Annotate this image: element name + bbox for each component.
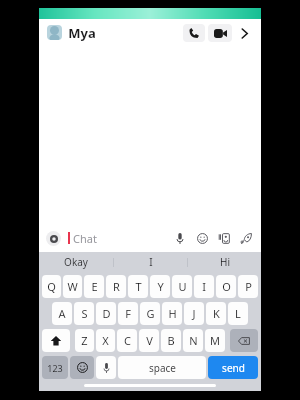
button[interactable]: send	[208, 356, 258, 379]
staticText: Okay	[64, 255, 88, 269]
button[interactable]: Stickers	[216, 230, 232, 246]
staticText: M	[210, 333, 220, 348]
button[interactable]: Video call	[208, 24, 232, 42]
button[interactable]: Camera	[46, 231, 61, 246]
staticText: C	[124, 333, 131, 348]
staticText: J	[192, 306, 196, 321]
staticText: V	[146, 333, 153, 348]
button[interactable]: L	[228, 302, 248, 325]
button[interactable]: W	[63, 275, 82, 298]
button[interactable]: M	[205, 329, 225, 352]
staticText: G	[146, 306, 155, 321]
button[interactable]: I	[194, 275, 214, 298]
staticText: U	[178, 279, 187, 294]
staticText: D	[102, 306, 111, 321]
staticText: Q	[47, 279, 56, 294]
button[interactable]: C	[117, 329, 137, 352]
button[interactable]: F	[118, 302, 138, 325]
staticText: S	[81, 306, 88, 321]
staticText: Mya	[68, 24, 96, 42]
staticText: L	[235, 306, 241, 321]
staticText: A	[58, 306, 66, 321]
staticText: send	[222, 361, 245, 375]
staticText: P	[245, 279, 252, 294]
button[interactable]: Shift	[42, 329, 70, 352]
button[interactable]: O	[216, 275, 236, 298]
button[interactable]: V	[139, 329, 159, 352]
staticText: I	[149, 255, 153, 269]
button[interactable]: X	[96, 329, 115, 352]
button[interactable]: 123	[42, 356, 68, 379]
button[interactable]: Games	[238, 230, 254, 246]
button[interactable]: Y	[150, 275, 170, 298]
staticText: T	[135, 279, 142, 294]
button[interactable]: R	[106, 275, 126, 298]
button[interactable]: S	[74, 302, 94, 325]
staticText: Chat	[73, 231, 97, 246]
staticText: F	[125, 306, 131, 321]
button[interactable]: I	[114, 252, 187, 272]
staticText: Y	[157, 279, 164, 294]
button[interactable]: E	[84, 275, 104, 298]
button[interactable]: D	[96, 302, 116, 325]
staticText: O	[222, 279, 231, 294]
staticText: Z	[81, 333, 88, 348]
button[interactable]: Z	[75, 329, 94, 352]
button[interactable]: Okay	[39, 252, 113, 272]
staticText: K	[213, 306, 220, 321]
button[interactable]: Voice	[172, 230, 188, 246]
staticText: W	[67, 279, 78, 294]
button[interactable]: Hi	[188, 252, 261, 272]
button[interactable]: More	[235, 24, 253, 42]
staticText: B	[167, 333, 175, 348]
staticText: 123	[47, 362, 63, 374]
button[interactable]: B	[161, 329, 181, 352]
button[interactable]: U	[172, 275, 192, 298]
button[interactable]: G	[140, 302, 160, 325]
staticText: E	[91, 279, 98, 294]
staticText: H	[168, 306, 177, 321]
button[interactable]: space	[118, 356, 206, 379]
staticText: space	[149, 361, 176, 375]
staticText: N	[189, 333, 198, 348]
button[interactable]: Emoji	[70, 356, 94, 379]
staticText: Hi	[220, 255, 230, 269]
button[interactable]: Q	[42, 275, 61, 298]
staticText: R	[113, 279, 120, 294]
staticText: I	[202, 279, 206, 294]
button[interactable]: J	[184, 302, 204, 325]
staticText: X	[102, 333, 109, 348]
button[interactable]: Backspace	[230, 329, 258, 352]
button[interactable]: Voice input	[96, 356, 116, 379]
button[interactable]: N	[183, 329, 203, 352]
button[interactable]: P	[238, 275, 258, 298]
button[interactable]: H	[162, 302, 182, 325]
button[interactable]: K	[206, 302, 226, 325]
button[interactable]: Emoji	[194, 230, 210, 246]
button[interactable]: Call	[183, 24, 205, 42]
button[interactable]: A	[52, 302, 72, 325]
button[interactable]: T	[128, 275, 148, 298]
